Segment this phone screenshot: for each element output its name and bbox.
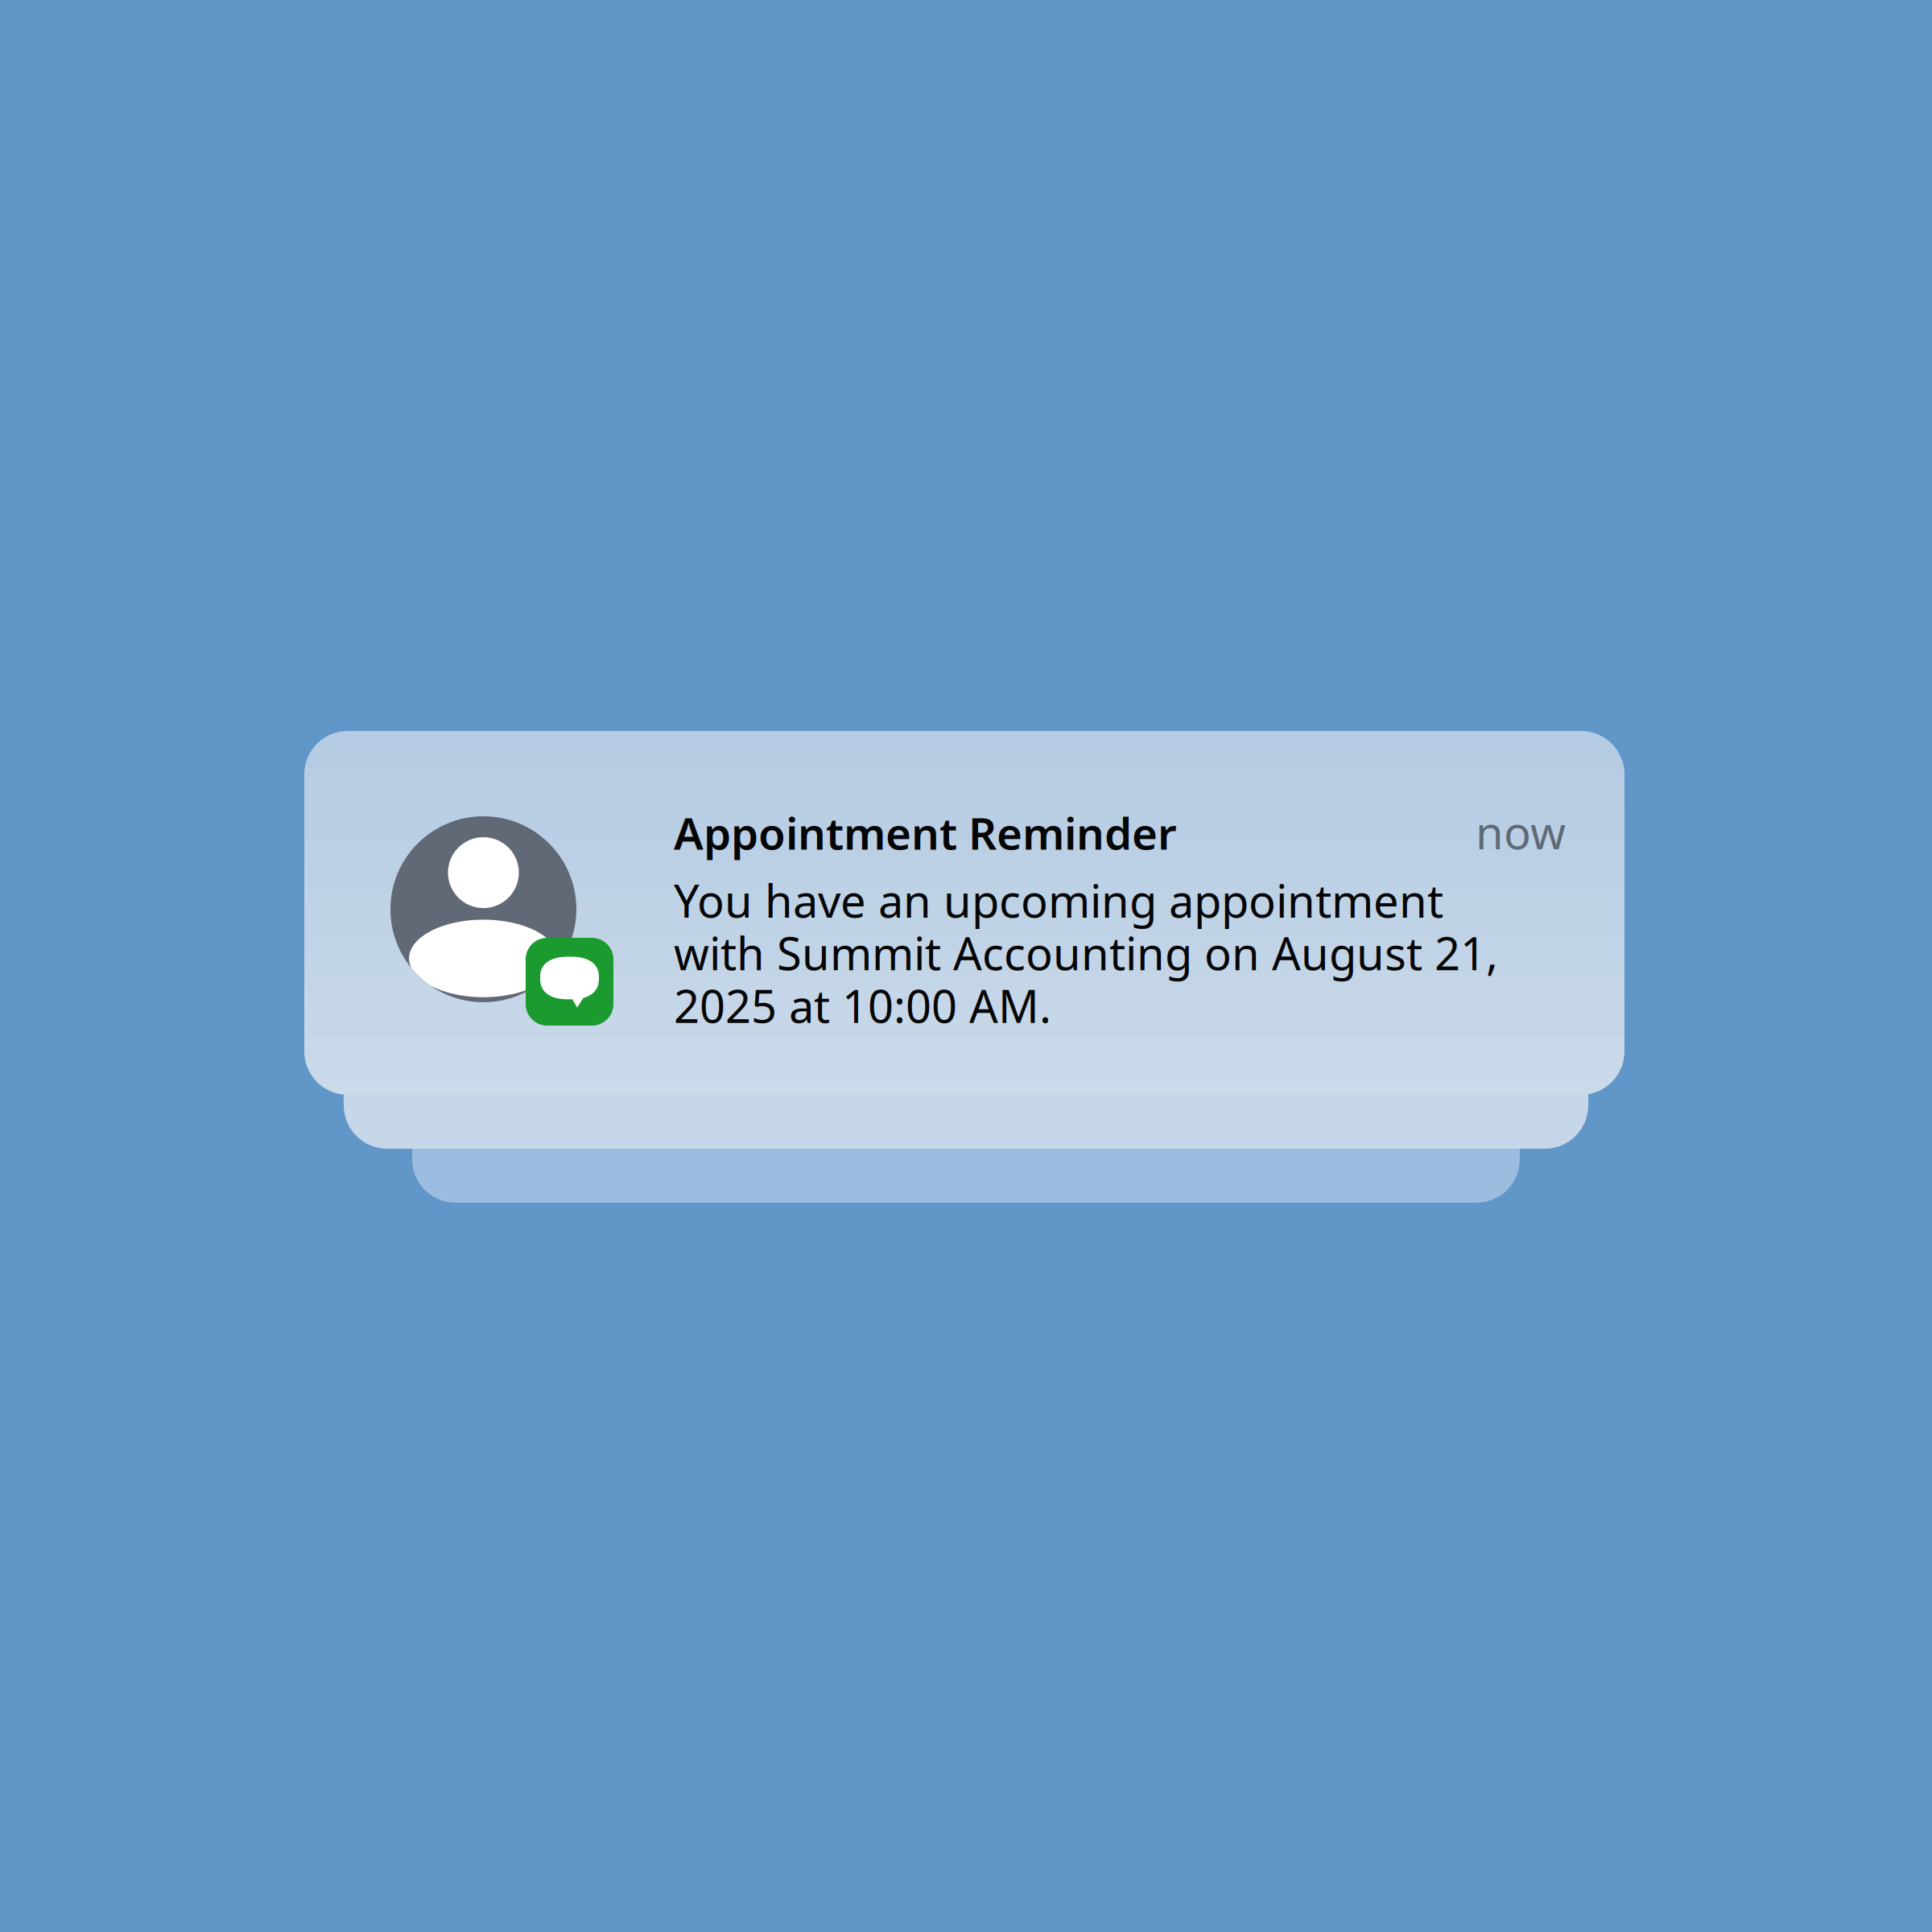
staticText: You have an upcoming appointment with Su… [674, 870, 1498, 1035]
button[interactable]: Appointment Reminder [304, 731, 1624, 1095]
staticText: Appointment Reminder [674, 803, 1177, 862]
staticText: now [1476, 802, 1566, 862]
